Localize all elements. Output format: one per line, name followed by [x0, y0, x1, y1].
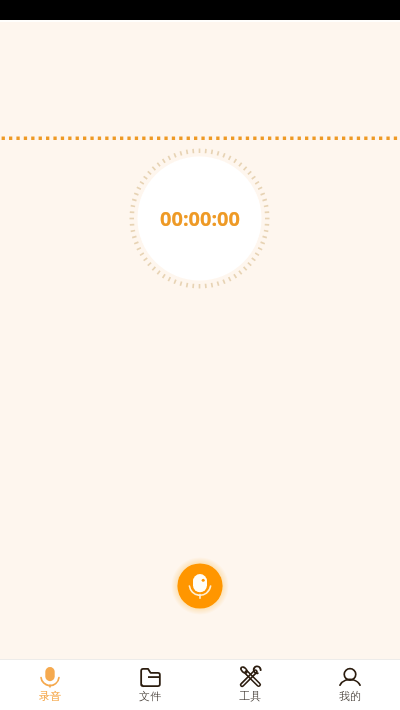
button[interactable]: 我的: [300, 660, 400, 710]
staticText: 我的: [339, 689, 361, 703]
button[interactable]: Start recording: [171, 557, 229, 615]
staticText: 00:00:00: [160, 205, 240, 232]
button[interactable]: 录音: [0, 660, 100, 710]
button[interactable]: 工具: [200, 660, 300, 710]
staticText: 文件: [139, 689, 161, 703]
button[interactable]: 文件: [100, 660, 200, 710]
staticText: 工具: [239, 689, 261, 703]
staticText: 录音: [39, 689, 61, 703]
